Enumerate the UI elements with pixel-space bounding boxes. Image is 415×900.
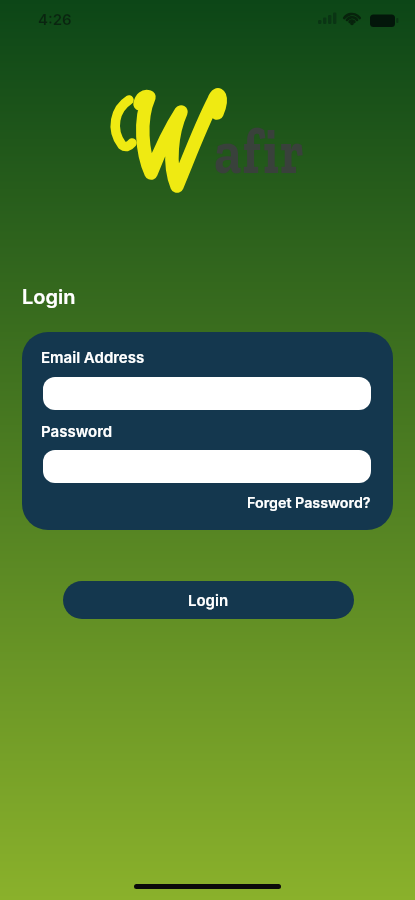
button[interactable] [43,377,371,410]
staticText: 4:26 [38,10,72,28]
button[interactable] [43,450,371,483]
staticText: Password [41,422,113,440]
button[interactable]: Forget Password? [247,494,371,511]
button[interactable]: Login [63,581,354,619]
staticText: Login [188,591,229,609]
staticText: Email Address [41,348,145,366]
staticText: afir [214,112,305,190]
staticText: Login [22,285,76,309]
